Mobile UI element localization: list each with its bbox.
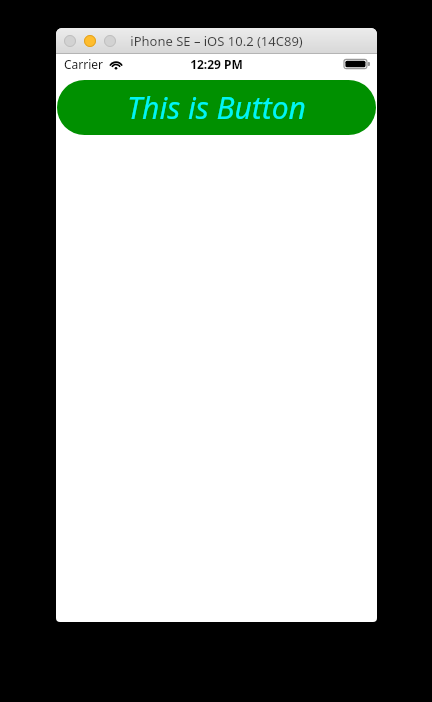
staticText: Carrier — [64, 56, 104, 72]
button[interactable]: This is Button — [57, 80, 376, 135]
button[interactable]: Zoom — [104, 35, 116, 47]
button[interactable]: Minimize — [84, 35, 96, 47]
staticText: 12:29 PM — [190, 56, 243, 72]
staticText: iPhone SE – iOS 10.2 (14C89) — [130, 32, 303, 50]
button[interactable]: Close — [64, 35, 76, 47]
staticText: This is Button — [127, 87, 306, 128]
